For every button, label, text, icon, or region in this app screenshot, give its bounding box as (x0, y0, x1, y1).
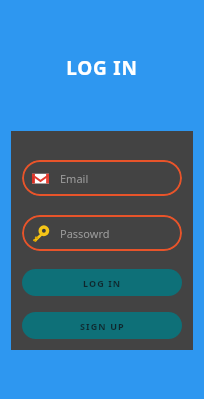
staticText: LOG IN (83, 277, 122, 289)
button[interactable]: SIGN UP (22, 312, 182, 339)
button[interactable]: LOG IN (22, 269, 182, 296)
other: Password (32, 225, 50, 243)
button[interactable]: Password (22, 215, 182, 251)
other: Email (32, 170, 49, 187)
staticText: Passowrd (60, 226, 110, 241)
staticText: Email (60, 171, 89, 186)
button[interactable]: Email (22, 160, 182, 196)
staticText: SIGN UP (80, 320, 125, 332)
staticText: LOG IN (66, 55, 138, 81)
